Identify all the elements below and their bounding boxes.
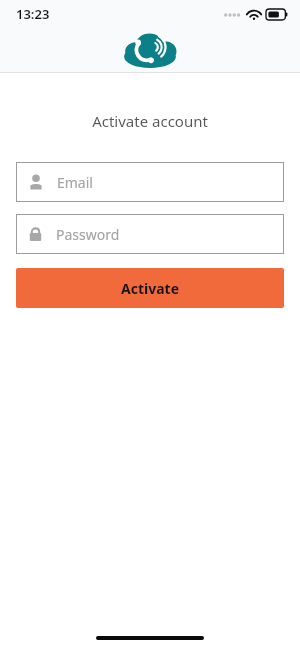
button[interactable]: Email <box>16 162 284 202</box>
staticText: Email <box>57 173 93 192</box>
button[interactable]: Activate <box>16 268 284 308</box>
staticText: Password <box>56 225 120 244</box>
staticText: 13:23 <box>16 5 50 23</box>
button[interactable]: Password <box>16 214 284 254</box>
staticText: Activate account <box>0 111 300 131</box>
other: App logo <box>123 32 177 68</box>
staticText: Activate <box>121 279 179 298</box>
